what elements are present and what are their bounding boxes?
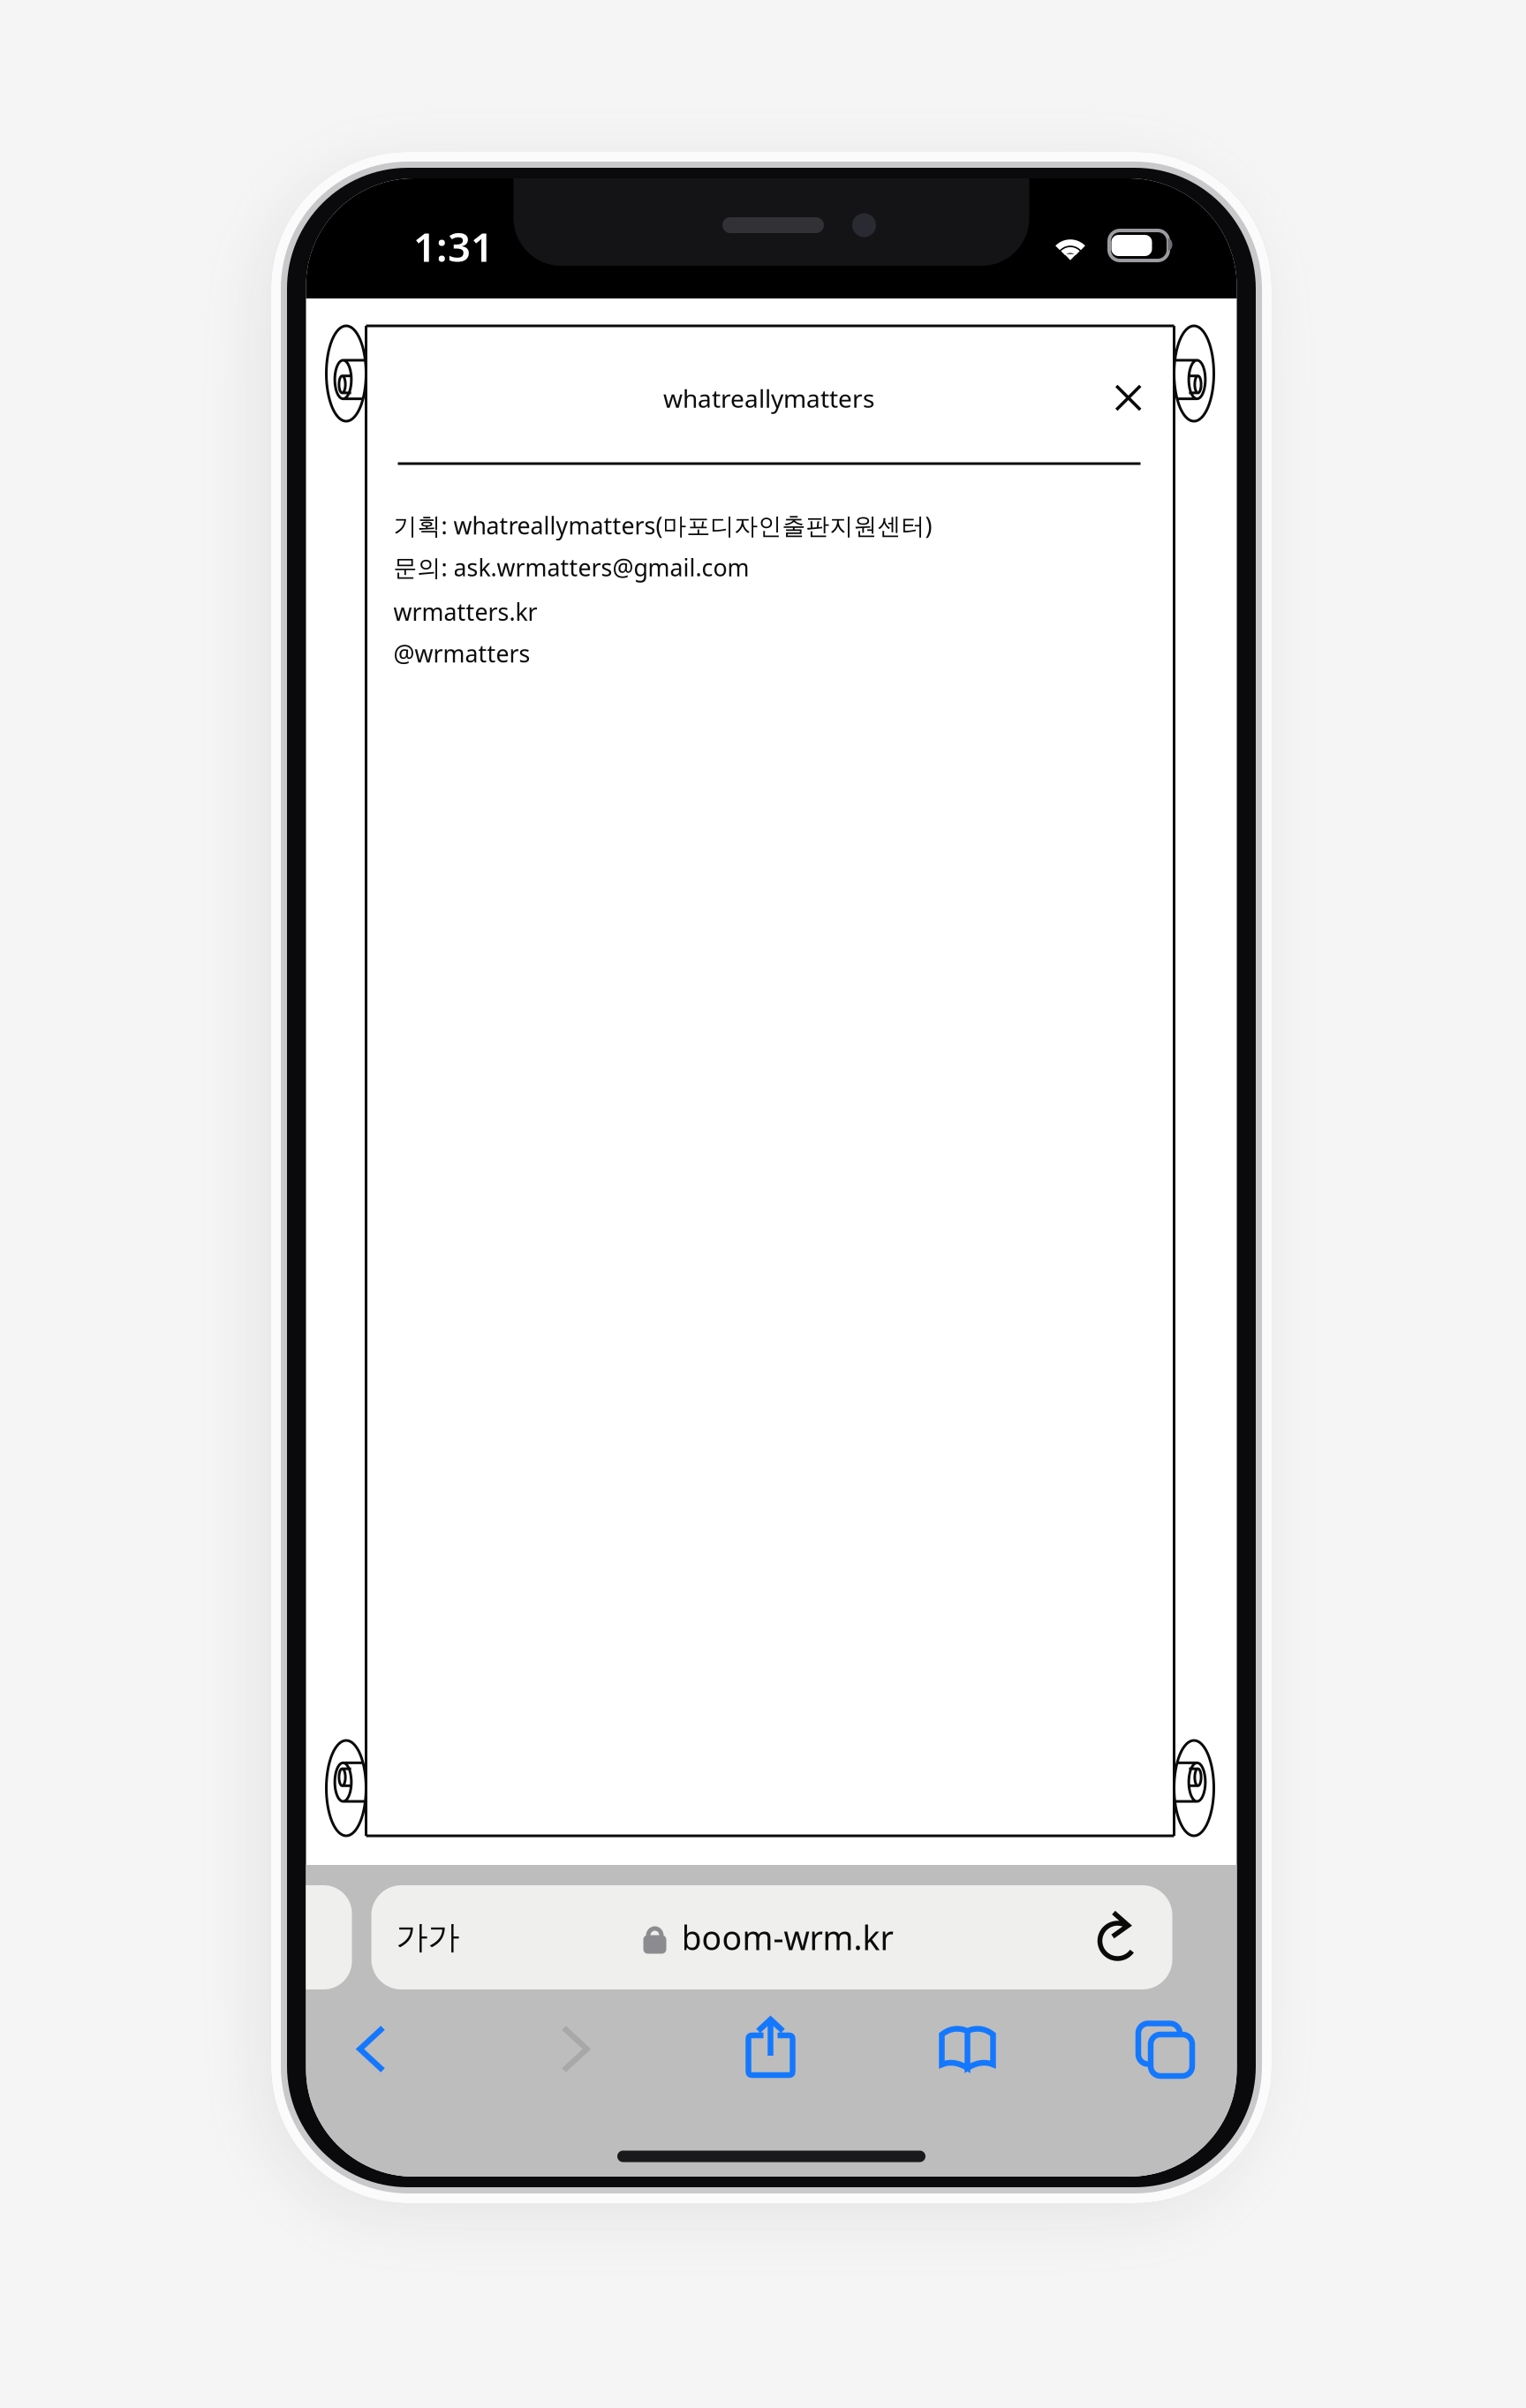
staticText: wrmatters.kr bbox=[393, 596, 537, 627]
staticText: @wrmatters bbox=[393, 638, 530, 669]
staticText: boom-wrm.kr bbox=[681, 1915, 893, 1959]
button[interactable]: Tabs bbox=[1138, 2022, 1193, 2077]
staticText: 가가 bbox=[396, 1918, 460, 1957]
staticText: 기획: whatreallymatters(마포디자인출판지원센터) bbox=[393, 510, 932, 541]
staticText: 1:31 bbox=[413, 220, 494, 273]
button[interactable]: Share bbox=[746, 2017, 795, 2079]
button[interactable]: 가가 bbox=[371, 1885, 1172, 1989]
button[interactable]: Close bbox=[1111, 381, 1146, 415]
button[interactable]: Bookmarks bbox=[939, 2023, 996, 2076]
staticText: 문의: ask.wrmatters@gmail.com bbox=[393, 552, 749, 583]
button[interactable]: Forward bbox=[559, 2023, 591, 2075]
staticText: whatreallymatters bbox=[663, 382, 874, 415]
button[interactable]: Back bbox=[355, 2023, 387, 2075]
